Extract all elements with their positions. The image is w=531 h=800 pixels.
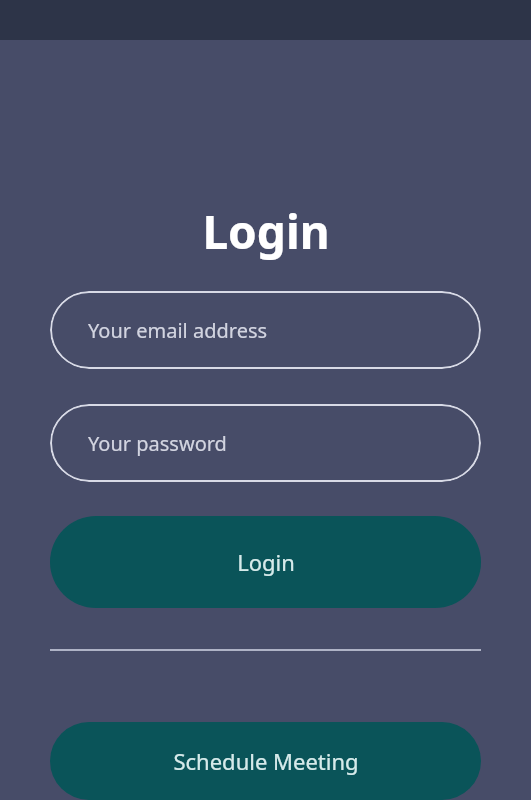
staticText: Login: [237, 547, 295, 577]
staticText: Your email address: [88, 317, 268, 344]
staticText: Your password: [88, 430, 227, 457]
staticText: Login: [202, 200, 330, 263]
button[interactable]: Schedule Meeting: [50, 722, 481, 800]
button[interactable]: Your email address: [50, 291, 481, 369]
button[interactable]: Your password: [50, 404, 481, 482]
button[interactable]: Login: [50, 516, 481, 608]
staticText: Schedule Meeting: [173, 746, 359, 776]
